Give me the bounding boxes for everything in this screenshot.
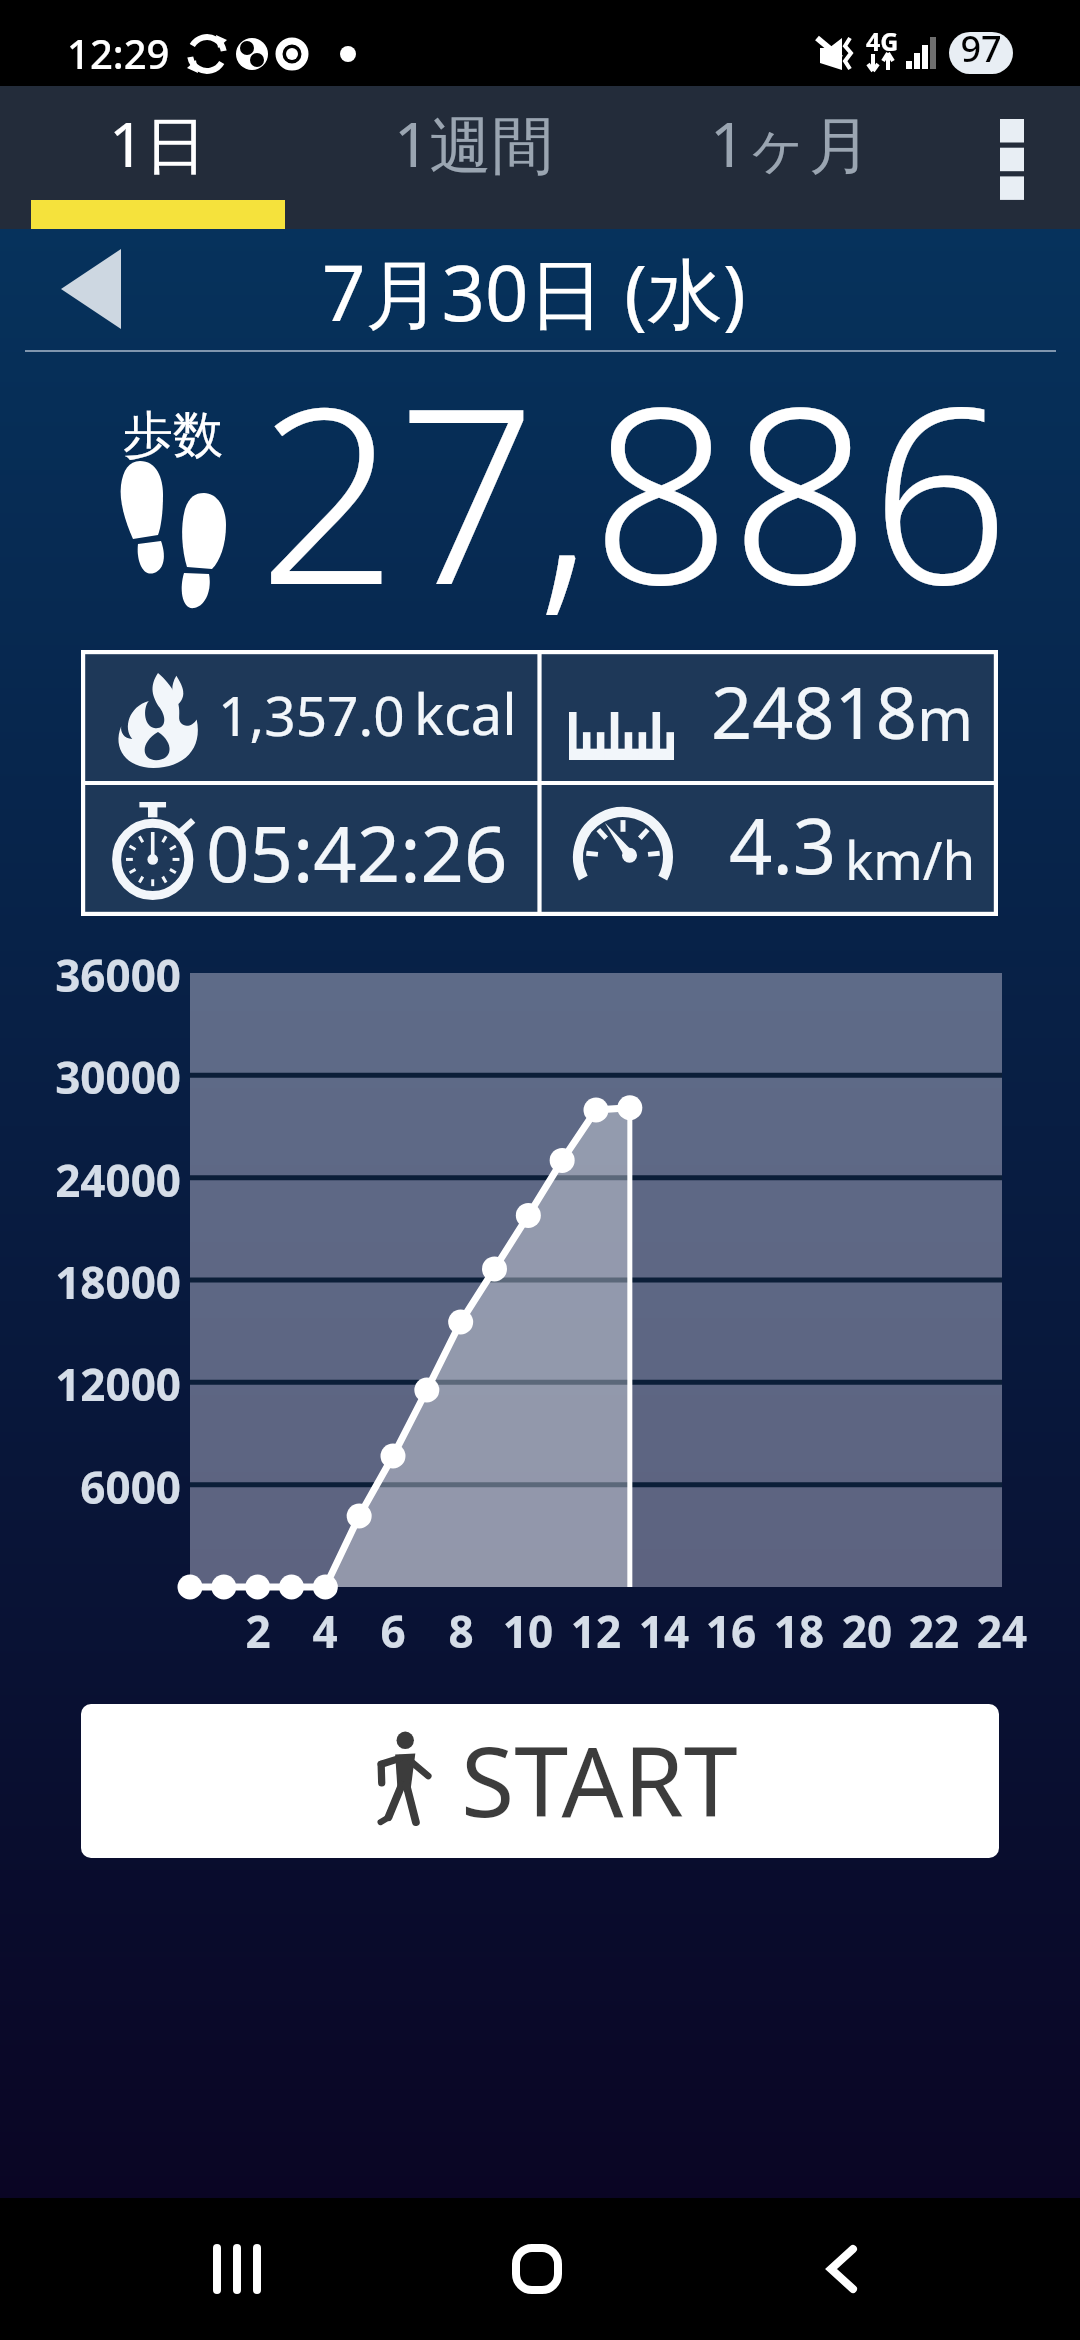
staticText: 7月30日 (水) (0, 240, 1074, 344)
staticText: 8 (421, 1601, 501, 1661)
button[interactable]: Home (437, 2198, 637, 2340)
staticText: 18 (759, 1601, 839, 1661)
staticText: 97 (949, 24, 1013, 73)
button[interactable]: START (81, 1704, 999, 1858)
button[interactable]: 05:42:26 (81, 783, 539, 916)
staticText: 1日 (109, 101, 207, 186)
staticText: 1ヶ月 (710, 101, 871, 186)
staticText: 6000 (3, 1457, 181, 1517)
staticText: 27,886 (258, 323, 1010, 655)
staticText: 6 (353, 1601, 433, 1661)
button[interactable]: 1日 (0, 86, 316, 229)
button[interactable]: Back (742, 2198, 942, 2340)
staticText: 4.3 (729, 793, 837, 897)
staticText: 05:42:26 (206, 801, 508, 905)
button[interactable]: 1ヶ月 (632, 86, 948, 229)
staticText: 30000 (3, 1047, 181, 1107)
staticText: kcal (414, 675, 517, 751)
staticText: 12000 (3, 1354, 181, 1414)
button[interactable]: Recents (137, 2198, 337, 2340)
staticText: 16 (691, 1601, 771, 1661)
staticText: m (917, 677, 974, 759)
staticText: km/h (845, 823, 976, 895)
staticText: 12:29 (67, 26, 170, 80)
staticText: 歩数 (123, 404, 223, 467)
staticText: 2 (218, 1601, 298, 1661)
button[interactable]: 1,357.0 (81, 650, 539, 783)
staticText: 12 (556, 1601, 636, 1661)
button[interactable]: 24818 (539, 650, 998, 783)
button[interactable]: 1週間 (316, 86, 632, 229)
button[interactable]: 4.3 (539, 783, 998, 916)
staticText: 24818 (711, 662, 917, 760)
staticText: 1,357.0 (218, 677, 405, 752)
staticText: 18000 (3, 1252, 181, 1312)
staticText: 4G (866, 24, 899, 58)
staticText: 14 (624, 1601, 704, 1661)
button[interactable]: Previous day (36, 234, 146, 344)
staticText: 1週間 (394, 101, 554, 186)
staticText: 22 (894, 1601, 974, 1661)
staticText: 10 (488, 1601, 568, 1661)
staticText: 36000 (3, 945, 181, 1005)
staticText: 20 (827, 1601, 907, 1661)
staticText: 24 (962, 1601, 1042, 1661)
staticText: 4 (285, 1601, 365, 1661)
button[interactable]: More options (954, 86, 1080, 229)
staticText: 24000 (3, 1150, 181, 1210)
staticText: START (461, 1713, 738, 1845)
